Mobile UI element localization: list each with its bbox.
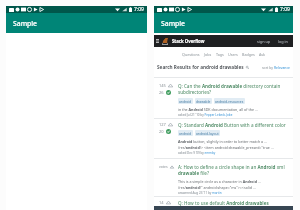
staticText: 20 [159, 129, 164, 134]
staticText: sign up [257, 39, 271, 44]
button[interactable]: Questions [180, 52, 202, 57]
staticText: sort by [262, 65, 274, 70]
staticText: Tags [216, 52, 224, 57]
button[interactable]: Users [226, 52, 240, 57]
button[interactable]: sign up [256, 39, 272, 44]
staticText: Search Results for android drawables [157, 64, 244, 70]
button[interactable]: 145 [154, 77, 293, 118]
staticText: 7:09 [134, 6, 144, 13]
staticText: Sample [13, 19, 38, 28]
staticText: A: How to define a circle shape in an An… [178, 164, 291, 177]
staticText: Questions [182, 52, 200, 57]
staticText: answered Aug 23 '11 by martin [178, 191, 222, 195]
button[interactable]: android [178, 130, 193, 136]
button[interactable]: Tags [214, 52, 226, 57]
button[interactable]: Relevance [274, 65, 290, 70]
staticText: log in [278, 39, 288, 44]
staticText: in the Android SDK documentation, all of… [178, 107, 258, 112]
staticText: 14 [159, 200, 164, 205]
staticText: Android button, slightly in order to bet… [178, 139, 267, 144]
staticText: Stack Overflow [172, 38, 205, 44]
button[interactable]: 14 [154, 196, 293, 206]
button[interactable]: Menu [155, 35, 159, 47]
staticText: Sample [161, 19, 186, 28]
staticText: Badges [242, 52, 255, 57]
button[interactable]: android-layout [195, 130, 220, 136]
staticText: 127 [159, 122, 166, 127]
staticText: 7:09 [280, 6, 290, 13]
staticText: Ask [259, 52, 266, 57]
staticText: /res/android/" android:shape="ms">=<soli… [178, 185, 256, 190]
button[interactable]: android-resources [214, 98, 245, 104]
staticText: android [179, 99, 192, 103]
staticText: Q: How to use default Android drawables [178, 200, 269, 206]
button[interactable]: log in [277, 39, 289, 44]
staticText: Jobs [204, 52, 212, 57]
staticText: asked Jul 21 '10 by Pepper Lebeck-Jobe [178, 113, 233, 117]
staticText: Users [228, 52, 238, 57]
button[interactable]: android [178, 98, 193, 104]
staticText: 26 [159, 90, 164, 95]
staticText: drawable [196, 99, 211, 103]
staticText: 145 [159, 83, 166, 88]
button[interactable]: votes [154, 158, 293, 196]
button[interactable]: 127 [154, 118, 293, 158]
staticText: Q: Can the Android drawable directory co… [178, 83, 291, 96]
staticText: android [179, 131, 192, 135]
staticText: android-layout [196, 131, 219, 135]
staticText: This is a simple circle as a character i… [178, 179, 261, 184]
button[interactable]: drawable [195, 98, 212, 104]
staticText: votes [159, 164, 168, 169]
button[interactable]: Ask [257, 52, 268, 57]
button[interactable]: Badges [240, 52, 257, 57]
button[interactable]: Jobs [202, 52, 214, 57]
staticText: android-resources [215, 99, 244, 103]
staticText: asked Dec 9 '09 by emmby [178, 151, 216, 155]
staticText: /res/android/> <item android:drawable_pr… [178, 145, 274, 150]
staticText: Relevance [274, 65, 290, 70]
staticText: Q: Standard Android Button with a differ… [178, 122, 286, 128]
